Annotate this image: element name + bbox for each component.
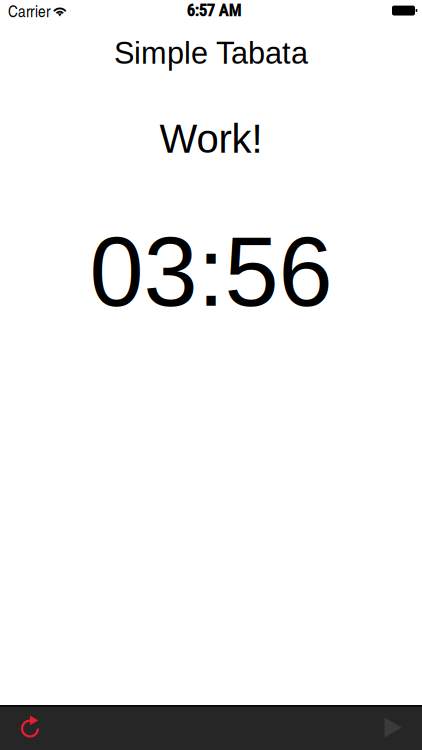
staticText: 03:56 xyxy=(89,218,332,326)
staticText: Simple Tabata xyxy=(114,36,308,70)
button[interactable]: Restart xyxy=(0,705,60,750)
staticText: Work! xyxy=(159,117,262,161)
staticText: 6:57 AM xyxy=(186,1,241,20)
button[interactable]: Start xyxy=(362,705,422,750)
staticText: Carrier xyxy=(8,0,51,22)
